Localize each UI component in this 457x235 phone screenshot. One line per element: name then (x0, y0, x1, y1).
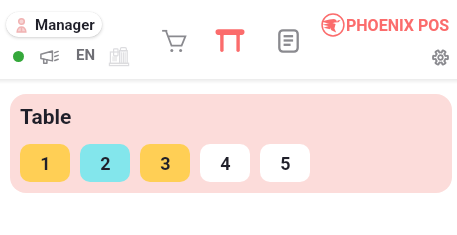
button[interactable]: Phoenix POS (321, 13, 345, 37)
button[interactable]: Orders (277, 28, 300, 53)
button[interactable]: Tables (214, 28, 245, 53)
button[interactable]: Manager (6, 12, 102, 37)
button[interactable]: 4 (200, 144, 250, 182)
button[interactable]: 1 (20, 144, 70, 182)
button[interactable]: Announcements (39, 48, 59, 67)
staticText: 5 (280, 153, 291, 174)
staticText: 2 (100, 153, 111, 174)
button[interactable]: Settings (430, 47, 451, 68)
button[interactable]: 5 (260, 144, 310, 182)
button[interactable]: Store (107, 45, 130, 68)
button[interactable]: 3 (140, 144, 190, 182)
staticText: Manager (35, 16, 95, 34)
staticText: Table (20, 105, 72, 130)
staticText: 3 (160, 153, 171, 174)
staticText: 4 (220, 153, 231, 174)
button[interactable]: Cart (161, 28, 187, 54)
button[interactable]: 2 (80, 144, 130, 182)
staticText: PHOENIX POS (346, 16, 450, 35)
staticText: EN (76, 46, 96, 64)
button[interactable]: EN (73, 46, 99, 64)
staticText: 1 (40, 153, 51, 174)
